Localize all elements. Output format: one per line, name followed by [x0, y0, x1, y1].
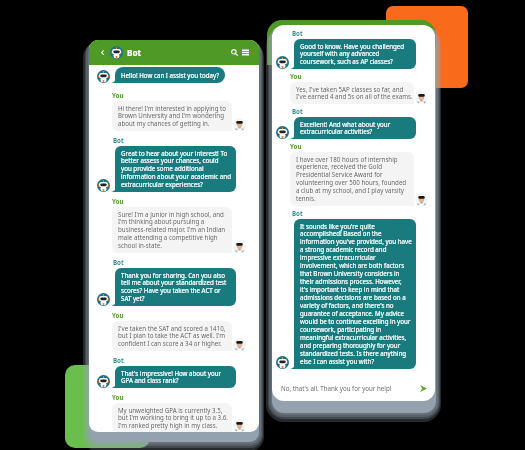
button[interactable]: No, that's all. Thank you for your help!: [272, 377, 435, 399]
staticText: I have over 180 hours of internship expe…: [296, 155, 407, 203]
button[interactable]: Search: [229, 47, 240, 58]
staticText: Yes, I've taken 5AP classes so far, and …: [296, 85, 408, 101]
staticText: I've taken the SAT and scored a 1410, bu…: [118, 324, 226, 348]
staticText: Bot: [292, 209, 303, 217]
staticText: You: [112, 393, 124, 401]
staticText: Sure! I'm a junior in high school, and I…: [118, 210, 226, 250]
staticText: No, that's all. Thank you for your help!: [281, 384, 418, 392]
staticText: Bot: [127, 47, 142, 58]
button[interactable]: Thank you for sharing. Can you also tell…: [115, 268, 236, 306]
button[interactable]: It sounds like you're quite accomplished…: [294, 219, 416, 369]
button[interactable]: Excellent! And what about your extracurr…: [294, 117, 416, 139]
staticText: Bot: [292, 107, 303, 115]
other: Send: [418, 383, 429, 394]
staticText: Bot: [113, 136, 124, 144]
button[interactable]: Yes, I've taken 5AP classes so far, and …: [290, 82, 414, 104]
button[interactable]: My unweighted GPA is currently 3.5, but …: [112, 403, 232, 432]
button[interactable]: Menu: [240, 47, 251, 58]
staticText: Bot: [292, 29, 303, 37]
button[interactable]: Hello! How can I assist you today?: [115, 67, 225, 83]
button[interactable]: Sure! I'm a junior in high school, and I…: [112, 207, 232, 253]
button[interactable]: That's impressive! How about your GPA an…: [115, 366, 236, 388]
staticText: You: [112, 197, 124, 205]
button[interactable]: I've taken the SAT and scored a 1410, bu…: [112, 321, 232, 351]
button[interactable]: Back: [97, 47, 108, 58]
staticText: Excellent! And what about your extracurr…: [300, 120, 391, 136]
staticText: It sounds like you're quite accomplished…: [300, 222, 410, 366]
staticText: You: [112, 311, 124, 319]
staticText: Hi there! I'm interested in applying to …: [118, 104, 226, 128]
staticText: Thank you for sharing. Can you also tell…: [121, 271, 227, 303]
button[interactable]: Great to hear about your interest! To be…: [115, 146, 236, 192]
staticText: You: [112, 91, 124, 99]
staticText: You: [290, 142, 302, 150]
staticText: Good to know. Have you challenged yourse…: [300, 42, 405, 66]
staticText: Bot: [113, 258, 124, 266]
button[interactable]: Hi there! I'm interested in applying to …: [112, 101, 232, 131]
staticText: Hello! How can I assist you today?: [121, 71, 219, 79]
staticText: Great to hear about your interest! To be…: [121, 149, 230, 189]
staticText: That's impressive! How about your GPA an…: [121, 369, 222, 385]
staticText: You: [290, 72, 302, 80]
staticText: Bot: [113, 356, 124, 364]
button[interactable]: I have over 180 hours of internship expe…: [290, 152, 414, 206]
staticText: My unweighted GPA is currently 3.5, but …: [118, 406, 226, 429]
button[interactable]: Good to know. Have you challenged yourse…: [294, 39, 416, 69]
